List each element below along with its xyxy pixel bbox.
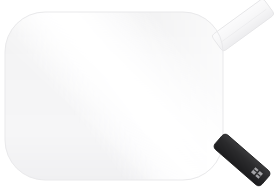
button[interactable]: Tempered glass screen protector xyxy=(0,0,275,189)
